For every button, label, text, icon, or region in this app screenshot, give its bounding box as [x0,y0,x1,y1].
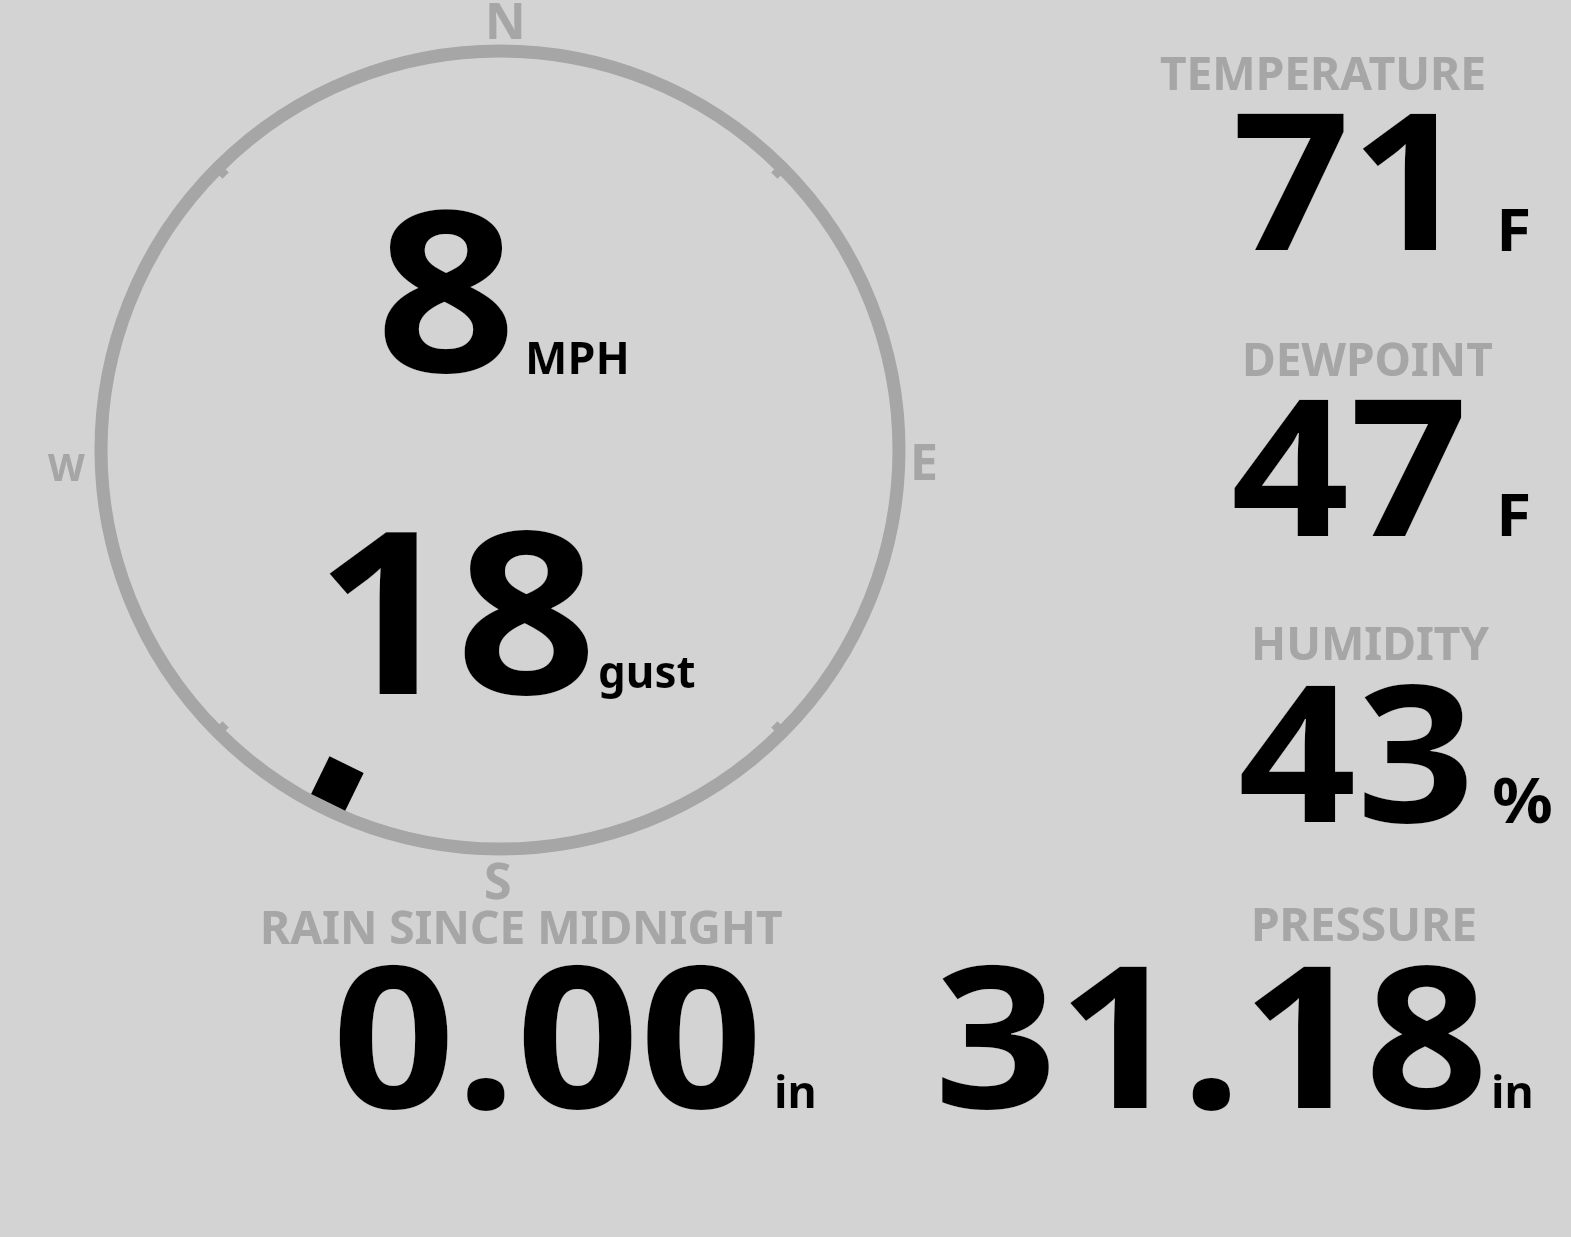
other: Weather station dashboard [0,0,1571,1237]
